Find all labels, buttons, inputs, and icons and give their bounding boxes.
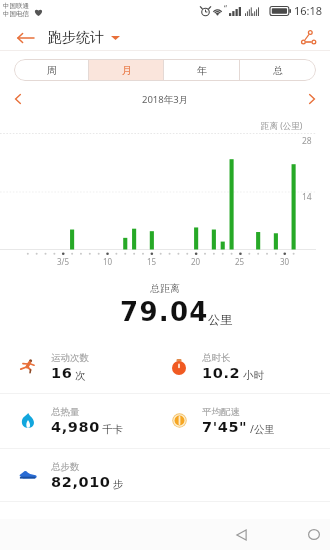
- staticText: 小时: [243, 369, 264, 382]
- button[interactable]: 月: [89, 59, 164, 81]
- button[interactable]: 周: [14, 59, 89, 81]
- staticText: 82,010: [51, 474, 111, 491]
- button[interactable]: 总步数: [14, 448, 165, 501]
- button[interactable]: Previous month: [6, 88, 30, 110]
- staticText: 月: [122, 64, 132, 77]
- staticText: 总热量: [51, 406, 80, 418]
- staticText: 公里: [208, 312, 232, 327]
- staticText: 总距离: [150, 282, 180, 295]
- staticText: 次: [75, 369, 86, 382]
- staticText: 总时长: [202, 352, 231, 364]
- button[interactable]: 总时长: [165, 340, 316, 392]
- button[interactable]: 总: [240, 59, 316, 81]
- staticText: 79.04: [120, 297, 209, 327]
- staticText: /公里: [250, 422, 275, 436]
- staticText: 年: [197, 64, 207, 77]
- staticText: 总步数: [51, 461, 80, 473]
- button[interactable]: 总热量: [14, 393, 165, 447]
- staticText: 10.2: [202, 365, 241, 382]
- staticText: 周: [47, 64, 57, 77]
- staticText: 20: [191, 256, 201, 267]
- button[interactable]: 年: [164, 59, 240, 81]
- staticText: 7'45": [202, 419, 248, 436]
- staticText: 25: [235, 256, 245, 267]
- button[interactable]: Back: [76, 519, 330, 550]
- staticText: 10: [103, 256, 113, 267]
- staticText: 16: [51, 365, 73, 382]
- staticText: 总: [273, 64, 283, 77]
- staticText: 千卡: [102, 423, 123, 436]
- staticText: 2018年3月: [142, 93, 189, 106]
- staticText: 14: [302, 191, 312, 203]
- button[interactable]: Next month: [300, 88, 324, 110]
- staticText: 距离 (公里): [261, 120, 303, 132]
- button[interactable]: 跑步统计: [46, 25, 122, 51]
- staticText: 跑步统计: [48, 29, 104, 47]
- staticText: 运动次数: [51, 352, 89, 364]
- staticText: 16:18: [294, 3, 323, 18]
- button[interactable]: Back: [10, 24, 40, 51]
- staticText: “: [224, 3, 227, 14]
- staticText: 15: [147, 256, 157, 267]
- button[interactable]: Recents: [221, 519, 330, 550]
- button[interactable]: 平均配速: [165, 393, 316, 447]
- staticText: 30: [280, 256, 290, 267]
- staticText: 平均配速: [202, 406, 240, 418]
- staticText: 中国联通: [3, 2, 29, 10]
- staticText: 4,980: [51, 419, 100, 436]
- button[interactable]: Share: [294, 24, 322, 51]
- staticText: 3/5: [57, 256, 70, 267]
- button[interactable]: 运动次数: [14, 340, 165, 392]
- staticText: 步: [113, 478, 124, 491]
- staticText: 中国电信: [3, 10, 29, 18]
- button[interactable]: Home: [149, 519, 330, 550]
- staticText: 28: [302, 135, 312, 147]
